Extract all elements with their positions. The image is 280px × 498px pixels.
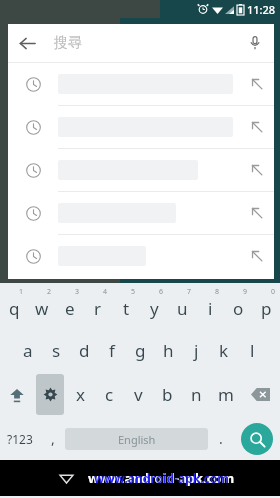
staticText: a [23, 339, 33, 362]
button[interactable]: Insert suggestion [240, 235, 274, 277]
staticText: k [219, 339, 229, 362]
button[interactable]: Insert suggestion [8, 192, 274, 234]
button[interactable]: ?123 [0, 417, 40, 460]
button[interactable]: m [211, 372, 240, 417]
button[interactable]: g [126, 328, 154, 372]
staticText: , [51, 429, 55, 448]
button[interactable]: Insert suggestion [8, 235, 274, 277]
staticText: 5 [131, 287, 136, 297]
button[interactable]: x [66, 372, 95, 417]
button[interactable]: Back [8, 24, 274, 62]
button[interactable]: Insert suggestion [8, 63, 274, 105]
staticText: . [219, 429, 223, 448]
staticText: l [250, 339, 255, 362]
button[interactable]: Insert suggestion [240, 192, 274, 234]
button[interactable]: Shift [0, 372, 34, 417]
button[interactable]: b [153, 372, 182, 417]
staticText: 2 [47, 287, 52, 297]
button[interactable]: 2 [28, 283, 56, 328]
staticText: d [79, 339, 90, 362]
button[interactable]: 9 [224, 283, 252, 328]
button[interactable]: Insert suggestion [8, 106, 274, 148]
button[interactable]: . [208, 417, 233, 460]
staticText: ?123 [7, 431, 33, 447]
staticText: 7 [187, 287, 192, 297]
button[interactable]: Voice search [236, 24, 274, 62]
staticText: y [150, 297, 159, 320]
button[interactable]: 5 [112, 283, 140, 328]
staticText: u [177, 297, 188, 320]
button[interactable]: Insert suggestion [240, 106, 274, 148]
staticText: s [52, 339, 61, 362]
button[interactable]: k [210, 328, 238, 372]
staticText: r [94, 297, 102, 320]
button[interactable]: Insert suggestion [240, 149, 274, 191]
button[interactable]: 4 [84, 283, 112, 328]
button[interactable]: Settings [36, 374, 64, 415]
staticText: 3 [75, 287, 80, 297]
staticText: 11:28 [247, 2, 276, 17]
staticText: 1 [19, 287, 24, 297]
staticText: o [233, 297, 244, 320]
button[interactable]: Back [8, 24, 46, 62]
button[interactable]: n [182, 372, 211, 417]
staticText: t [123, 297, 130, 320]
staticText: n [191, 383, 202, 406]
staticText: x [76, 383, 85, 406]
staticText: g [135, 339, 146, 362]
button[interactable]: f [98, 328, 126, 372]
staticText: p [261, 297, 272, 320]
staticText: 8 [215, 287, 220, 297]
button[interactable]: a [14, 328, 42, 372]
button[interactable]: s [42, 328, 70, 372]
staticText: 9 [243, 287, 248, 297]
button[interactable]: h [154, 328, 182, 372]
button[interactable]: 3 [56, 283, 84, 328]
button[interactable]: 8 [196, 283, 224, 328]
staticText: v [134, 383, 143, 406]
staticText: c [105, 383, 114, 406]
staticText: e [65, 297, 75, 320]
staticText: 4 [103, 287, 108, 297]
staticText: www.android-apk.com [94, 470, 229, 486]
button[interactable]: Hide keyboard [52, 464, 80, 492]
button[interactable]: l [238, 328, 266, 372]
staticText: b [162, 383, 173, 406]
staticText: 搜尋 [54, 34, 82, 52]
button[interactable]: 7 [168, 283, 196, 328]
staticText: 0 [271, 287, 276, 297]
staticText: f [109, 339, 115, 362]
button[interactable]: j [182, 328, 210, 372]
staticText: h [163, 339, 174, 362]
button[interactable]: , [40, 417, 65, 460]
button[interactable]: v [124, 372, 153, 417]
button[interactable]: 0 [252, 283, 280, 328]
button[interactable]: Backspace [240, 372, 280, 417]
staticText: m [218, 383, 234, 406]
button[interactable]: Insert suggestion [240, 63, 274, 105]
staticText: j [194, 339, 199, 362]
button[interactable]: Search [241, 423, 273, 455]
button[interactable]: c [95, 372, 124, 417]
button[interactable]: d [70, 328, 98, 372]
button[interactable]: 6 [140, 283, 168, 328]
staticText: w [35, 297, 49, 320]
button[interactable]: Insert suggestion [8, 149, 274, 191]
staticText: www.android-apk.com [88, 469, 235, 487]
staticText: q [9, 297, 20, 320]
staticText: English [118, 432, 156, 447]
button[interactable]: 1 [0, 283, 28, 328]
staticText: 6 [159, 287, 164, 297]
button[interactable]: English [65, 428, 208, 450]
staticText: i [208, 297, 213, 320]
